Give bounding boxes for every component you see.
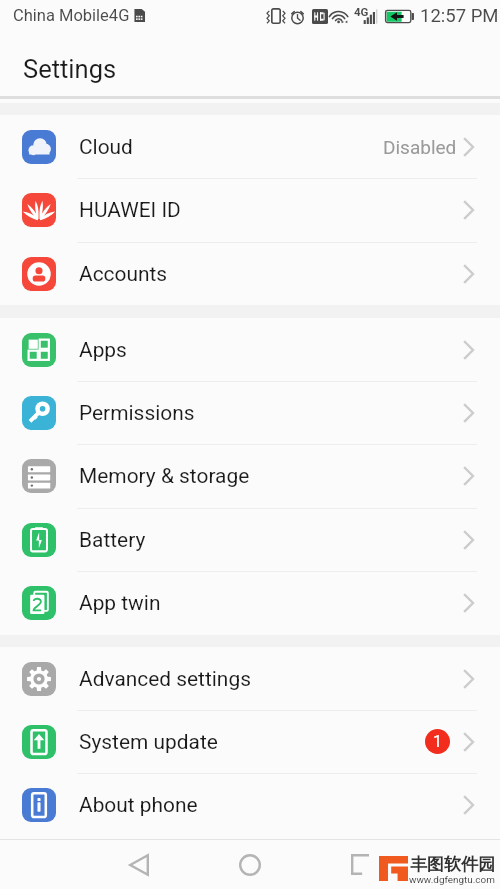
staticText: China Mobile4G [13,6,130,25]
button[interactable]: Recents [325,840,395,889]
staticText: 丰图软件园 [410,854,495,875]
staticText: Disabled [383,136,457,158]
button[interactable]: Advanced settings [0,647,500,710]
staticText: Cloud [79,135,133,159]
staticText: About phone [79,793,198,817]
button[interactable]: System update [0,710,500,773]
button[interactable]: About phone [0,773,500,836]
button[interactable]: Back [104,840,174,889]
button[interactable]: Permissions [0,381,500,444]
staticText: Memory & storage [79,464,250,488]
button[interactable]: HUAWEI ID [0,178,500,241]
staticText: 12:57 PM [420,5,499,27]
button[interactable]: App twin [0,571,500,634]
button[interactable]: Apps [0,318,500,381]
staticText: Accounts [79,262,168,286]
button[interactable]: Memory & storage [0,444,500,507]
staticText: HUAWEI ID [79,198,181,222]
staticText: System update [79,730,218,754]
button[interactable]: Cloud [0,115,500,178]
staticText: Battery [79,528,146,552]
button[interactable]: Home [215,840,285,889]
button[interactable]: Battery [0,508,500,571]
staticText: Apps [79,338,127,362]
staticText: www.dgfengtu.com [409,874,495,886]
staticText: Permissions [79,401,195,425]
button[interactable]: Accounts [0,242,500,305]
staticText: Settings [23,54,117,84]
staticText: 4G [354,5,369,18]
staticText: Advanced settings [79,667,251,691]
staticText: App twin [79,591,161,615]
staticText: 1 [433,732,442,751]
